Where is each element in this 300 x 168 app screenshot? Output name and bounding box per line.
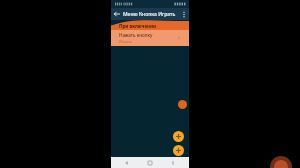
staticText: Меню Кнопка Играть (123, 11, 179, 18)
button[interactable]: Add (173, 131, 184, 142)
button[interactable]: Action (178, 100, 187, 109)
button[interactable]: Home (143, 157, 157, 168)
button[interactable]: Recent apps (166, 157, 180, 168)
button[interactable]: При включении (111, 20, 189, 30)
staticText: Играть (119, 39, 132, 44)
staticText: Нажать кнопку (119, 32, 153, 38)
button[interactable]: Нажать кнопку (111, 30, 189, 46)
staticText: При включении (119, 23, 157, 29)
button[interactable]: More options (179, 8, 189, 20)
button[interactable]: Play (173, 145, 184, 156)
button[interactable]: Back (120, 157, 134, 168)
button[interactable]: Back (111, 8, 123, 20)
